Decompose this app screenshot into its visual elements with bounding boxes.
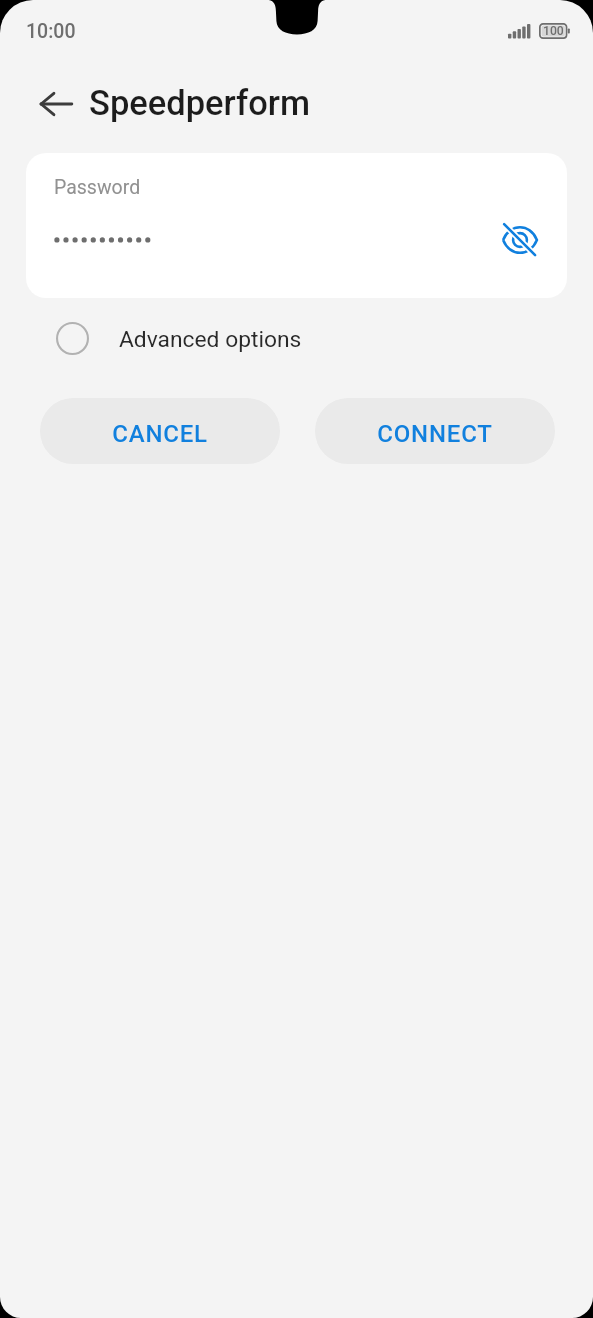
button[interactable]: CANCEL [40,398,280,464]
staticText: Advanced options [119,326,302,353]
staticText: Speedperform [89,83,311,123]
button[interactable]: CONNECT [315,398,555,464]
staticText: CANCEL [112,420,208,448]
button[interactable]: Show password [494,214,546,266]
staticText: 10:00 [26,20,76,43]
staticText: CONNECT [377,420,493,448]
staticText: Password [54,176,141,199]
staticText: 100 [543,24,564,38]
button[interactable]: Advanced options [40,313,330,363]
button[interactable]: Back [29,80,77,128]
